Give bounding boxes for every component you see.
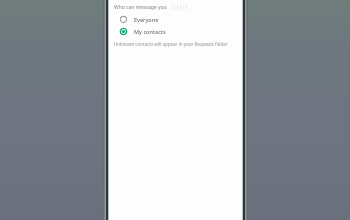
button[interactable]: Selected bbox=[114, 27, 237, 36]
staticText: Unknown contacts will appear in your Req… bbox=[114, 41, 237, 47]
staticText: Who can message you bbox=[114, 4, 167, 11]
other: Not selected bbox=[120, 16, 127, 23]
button[interactable]: Not selected bbox=[114, 15, 237, 24]
staticText: My contacts bbox=[134, 28, 166, 35]
other: Selected bbox=[120, 28, 127, 35]
staticText: Everyone bbox=[134, 16, 159, 23]
